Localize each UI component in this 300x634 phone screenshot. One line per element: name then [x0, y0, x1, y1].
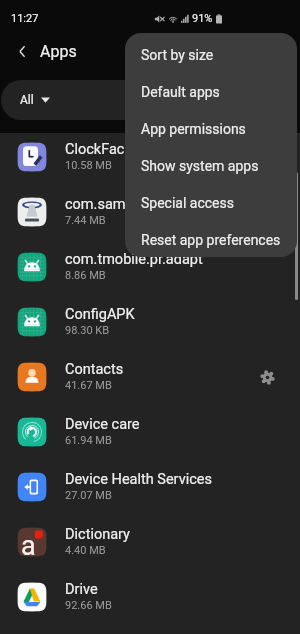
button[interactable]: Special access	[125, 184, 297, 221]
button[interactable]: Device Health Services	[0, 459, 300, 514]
staticText: Device Health Services	[65, 471, 212, 488]
staticText: Show system apps	[141, 158, 259, 174]
button[interactable]: App permissions	[125, 110, 297, 147]
button[interactable]: All	[1, 80, 231, 120]
staticText: Drive	[65, 581, 98, 598]
button[interactable]: Contacts	[0, 349, 300, 404]
staticText: Reset app preferences	[141, 232, 281, 248]
staticText: ClockFace	[65, 141, 133, 158]
staticText: 8.86 MB	[65, 269, 106, 282]
button[interactable]: com.tmobile.pr.adapt	[0, 239, 300, 294]
staticText: Apps	[40, 42, 77, 61]
staticText: Device care	[65, 416, 140, 433]
staticText: a	[21, 530, 36, 560]
button[interactable]: Navigate up	[9, 38, 35, 64]
button[interactable]: Default apps	[125, 73, 297, 110]
button[interactable]: App settings	[256, 366, 278, 388]
staticText: com.samsung.android	[65, 196, 210, 213]
staticText: com.tmobile.pr.adapt	[65, 251, 203, 268]
staticText: 41.67 MB	[65, 379, 112, 392]
button[interactable]: Reset app preferences	[125, 221, 297, 257]
staticText: Sort by size	[141, 47, 214, 63]
button[interactable]: Device care	[0, 404, 300, 459]
staticText: Special access	[141, 195, 234, 211]
staticText: Contacts	[65, 361, 124, 378]
button[interactable]: Show system apps	[125, 147, 297, 184]
button[interactable]: Sort by size	[125, 36, 297, 73]
staticText: 91%	[192, 12, 213, 25]
staticText: Dictionary	[65, 526, 130, 543]
staticText: 7.44 MB	[65, 214, 106, 227]
staticText: 92.66 MB	[65, 599, 112, 612]
button[interactable]: ClockFace	[0, 129, 300, 184]
staticText: Default apps	[141, 84, 220, 100]
staticText: 11:27	[11, 12, 39, 25]
staticText: App permissions	[141, 121, 246, 137]
staticText: ConfigAPK	[65, 306, 135, 323]
button[interactable]: Drive	[0, 569, 300, 624]
staticText: All	[20, 93, 34, 107]
button[interactable]: ConfigAPK	[0, 294, 300, 349]
staticText: 27.07 MB	[65, 489, 112, 502]
button[interactable]: a	[0, 514, 300, 569]
staticText: 10.58 MB	[65, 159, 112, 172]
staticText: 98.30 KB	[65, 324, 110, 337]
staticText: 61.94 MB	[65, 434, 112, 447]
button[interactable]: com.samsung.android	[0, 184, 300, 239]
staticText: 4.40 MB	[65, 544, 106, 557]
